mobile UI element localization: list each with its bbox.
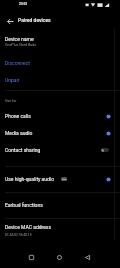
staticText: Unpair	[5, 77, 20, 83]
staticText: Phone calls	[5, 113, 31, 119]
button[interactable]: Phone calls	[0, 109, 120, 123]
staticText: Media audio	[5, 130, 33, 136]
staticText: 23:53	[19, 2, 28, 6]
button[interactable]: Home	[52, 250, 66, 264]
button[interactable]: Contact sharing	[0, 143, 120, 157]
button[interactable]: Back	[3, 14, 17, 28]
button[interactable]: Disconnect	[0, 56, 120, 70]
staticText: Use high-quality audio	[5, 176, 54, 182]
button[interactable]: Recent apps	[24, 250, 38, 264]
button[interactable]: Use high-quality audio	[0, 172, 120, 186]
staticText: AAC	[62, 178, 67, 181]
staticText: OnePlus Nord Buds	[5, 43, 37, 47]
button[interactable]: Earbud functions	[0, 198, 120, 212]
staticText: Use for	[5, 99, 17, 103]
staticText: Paired devices	[18, 17, 51, 23]
staticText: Device name	[5, 36, 34, 42]
button[interactable]: Device MAC address	[0, 219, 120, 243]
button[interactable]: Device name	[0, 33, 120, 52]
button[interactable]: Back	[80, 250, 94, 264]
staticText: Contact sharing	[5, 147, 41, 153]
staticText: Disconnect	[5, 60, 30, 66]
staticText: Device MAC address	[5, 224, 52, 230]
button[interactable]: Unpair	[0, 73, 120, 87]
staticText: Earbud functions	[5, 202, 43, 208]
staticText: 8C:4A:82:1B:4D:18	[5, 233, 32, 237]
button[interactable]: Media audio	[0, 126, 120, 140]
